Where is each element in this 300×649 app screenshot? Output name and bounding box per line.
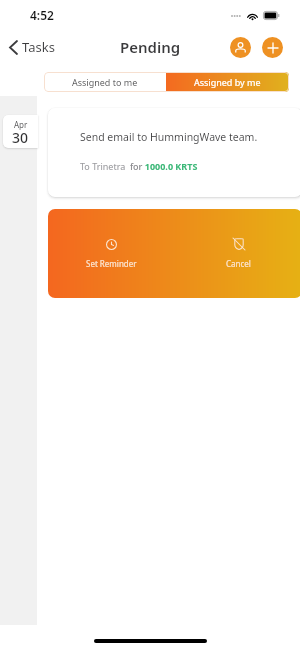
staticText: To Trinetra for 1000.0 KRTS <box>80 160 198 172</box>
button[interactable]: Set Reminder <box>48 209 175 298</box>
staticText: 30 <box>12 128 29 147</box>
button[interactable]: Assigned by me <box>166 72 289 92</box>
staticText: Cancel <box>226 258 251 269</box>
staticText: Set Reminder <box>86 258 137 269</box>
staticText: Assigned by me <box>194 76 261 88</box>
button[interactable]: Apr <box>3 115 38 148</box>
button[interactable]: Cancel <box>175 209 300 298</box>
button[interactable]: Assign to person <box>230 37 251 58</box>
staticText: Pending <box>120 37 181 57</box>
staticText: Assigned to me <box>72 76 138 88</box>
staticText: Tasks <box>22 38 55 56</box>
button[interactable]: Tasks <box>6 34 58 60</box>
button[interactable]: Send email to HummingWave team. <box>48 108 300 197</box>
staticText: Apr <box>14 119 28 130</box>
button[interactable]: Assigned to me <box>44 72 166 92</box>
staticText: 4:52 <box>30 7 54 23</box>
button[interactable]: Add task <box>262 37 283 58</box>
staticText: Send email to HummingWave team. <box>80 130 258 144</box>
